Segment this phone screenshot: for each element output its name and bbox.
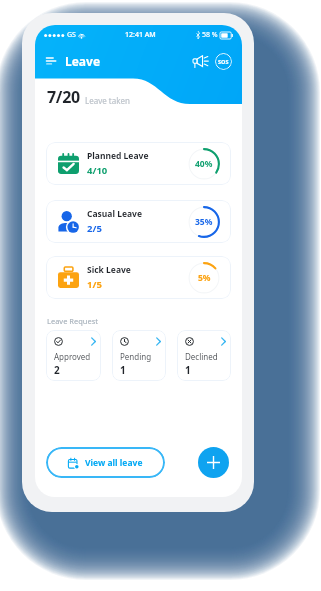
staticText: 35% — [195, 216, 213, 228]
button[interactable]: Add leave request — [198, 447, 229, 478]
staticText: 2 — [54, 363, 60, 377]
staticText: 1/5 — [87, 278, 102, 291]
staticText: 5% — [198, 272, 211, 284]
button[interactable]: View all leave — [46, 447, 165, 478]
staticText: Pending — [120, 351, 152, 362]
staticText: 40% — [195, 158, 213, 170]
button[interactable]: Approved — [46, 330, 101, 381]
staticText: Declined — [185, 351, 218, 362]
button[interactable]: SOS — [215, 53, 232, 70]
button[interactable]: Casual Leave — [46, 200, 231, 243]
staticText: Leave — [65, 53, 101, 69]
staticText: Approved — [54, 351, 91, 362]
staticText: Planned Leave — [87, 150, 149, 162]
staticText: 1 — [185, 363, 191, 377]
staticText: 1 — [120, 363, 126, 377]
staticText: Leave taken — [85, 95, 130, 106]
button[interactable]: Pending — [112, 330, 166, 381]
staticText: 2/5 — [87, 222, 102, 235]
staticText: View all leave — [85, 457, 143, 469]
staticText: GS — [67, 30, 76, 40]
staticText: 7/20 — [47, 86, 80, 108]
staticText: Sick Leave — [87, 264, 131, 276]
staticText: Casual Leave — [87, 208, 143, 220]
staticText: SOS — [218, 58, 229, 65]
staticText: Leave Request — [47, 316, 99, 326]
button[interactable]: Sick Leave — [46, 256, 231, 299]
button[interactable]: Announcements — [192, 55, 209, 68]
staticText: 12:41 AM — [125, 30, 156, 40]
button[interactable]: Planned Leave — [46, 142, 231, 185]
button[interactable]: Declined — [177, 330, 231, 381]
staticText: 58 % — [202, 30, 218, 40]
staticText: 4/10 — [87, 164, 108, 177]
button[interactable]: Menu — [46, 55, 58, 67]
